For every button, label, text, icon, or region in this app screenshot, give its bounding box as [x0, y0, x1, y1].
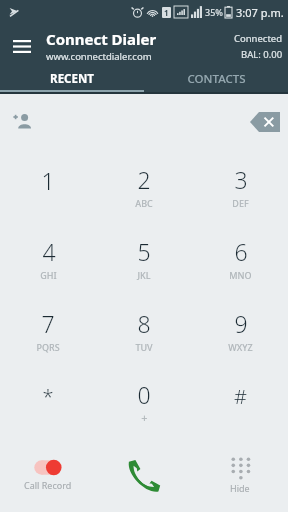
button[interactable]: Call	[96, 438, 192, 512]
staticText: 7	[41, 308, 55, 339]
button[interactable]: 6	[192, 222, 288, 294]
button[interactable]: Backspace	[250, 112, 280, 132]
staticText: *	[42, 383, 54, 410]
staticText: Connected	[234, 32, 283, 45]
button[interactable]: RECENT	[0, 68, 144, 90]
staticText: Hide	[230, 482, 250, 494]
button[interactable]: Call Record	[0, 438, 96, 512]
staticText: 2	[137, 164, 151, 195]
staticText: www.connectdialer.com	[46, 50, 152, 63]
staticText: 35%	[205, 6, 223, 18]
button[interactable]: 4	[0, 222, 96, 294]
staticText: 8	[137, 308, 151, 339]
staticText: Call Record	[24, 479, 72, 491]
button[interactable]: 2	[96, 150, 192, 222]
staticText: GHI	[40, 269, 57, 281]
staticText: #	[234, 383, 247, 410]
button[interactable]: 0	[96, 366, 192, 438]
button[interactable]: Hide	[192, 438, 288, 512]
button[interactable]: #	[192, 366, 288, 438]
staticText: 1	[41, 165, 55, 196]
staticText: ABC	[135, 197, 153, 209]
button[interactable]: Add contact	[6, 105, 40, 139]
staticText: JKL	[137, 269, 151, 281]
staticText: 4	[42, 236, 56, 267]
button[interactable]: *	[0, 366, 96, 438]
staticText: 3:07 p.m.	[236, 5, 284, 20]
staticText: MNO	[229, 269, 252, 281]
button[interactable]: Menu	[4, 28, 40, 64]
staticText: +	[141, 410, 148, 425]
staticText: TUV	[135, 341, 153, 353]
button[interactable]: 5	[96, 222, 192, 294]
staticText: BAL: 0.00	[241, 48, 283, 61]
staticText: 1	[164, 7, 169, 18]
button[interactable]: 9	[192, 294, 288, 366]
button[interactable]: 1	[0, 150, 96, 222]
staticText: 5	[137, 236, 151, 267]
staticText: WXYZ	[228, 341, 253, 353]
button[interactable]: 7	[0, 294, 96, 366]
staticText: Connect Dialer	[46, 29, 157, 49]
staticText: CONTACTS	[187, 71, 246, 87]
button[interactable]: Connect Dialer	[46, 29, 157, 63]
staticText: 0	[137, 379, 151, 410]
staticText: PQRS	[36, 341, 60, 353]
button[interactable]: 3	[192, 150, 288, 222]
button[interactable]: 8	[96, 294, 192, 366]
button[interactable]: CONTACTS	[144, 68, 288, 90]
staticText: 3	[234, 164, 248, 195]
staticText: RECENT	[50, 71, 94, 87]
staticText: 6	[234, 236, 248, 267]
staticText: DEF	[232, 197, 249, 209]
staticText: 9	[234, 308, 248, 339]
